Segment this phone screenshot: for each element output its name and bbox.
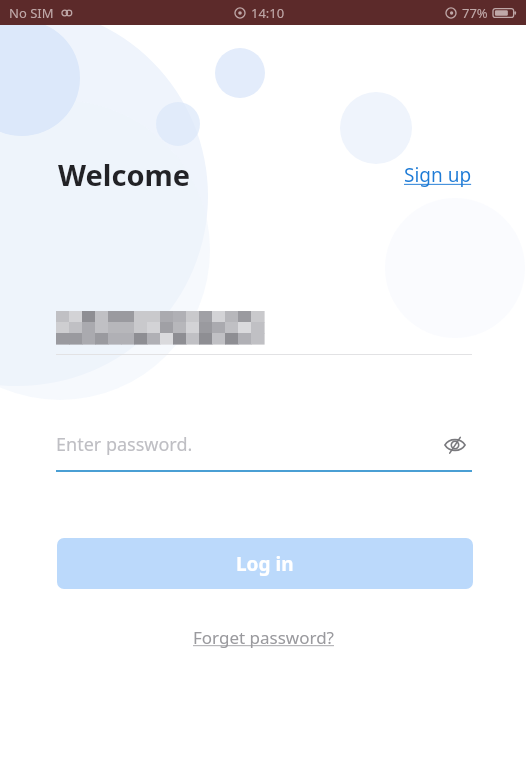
staticText: No SIM	[9, 4, 54, 22]
staticText: Log in	[236, 551, 294, 577]
staticText: 14:10	[251, 4, 285, 22]
button[interactable]: Forget password?	[187, 622, 340, 653]
staticText: Forget password?	[193, 626, 334, 649]
button[interactable]: Username field	[56, 305, 472, 355]
button[interactable]: Enter password.	[56, 425, 472, 472]
staticText: Welcome	[58, 155, 191, 194]
button[interactable]: Sign up	[402, 158, 474, 192]
button[interactable]: Show password	[438, 428, 472, 462]
staticText: Sign up	[404, 162, 472, 188]
staticText: 77%	[462, 4, 488, 22]
staticText: Enter password.	[56, 432, 193, 457]
button[interactable]: Log in	[57, 538, 473, 589]
